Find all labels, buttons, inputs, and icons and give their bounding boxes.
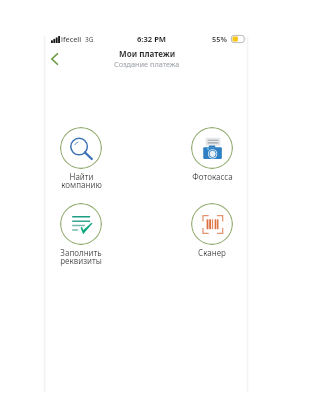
staticText: Мои платежи <box>119 48 176 59</box>
staticText: 3G <box>85 35 94 44</box>
staticText: Заполнить реквизиты <box>60 247 102 266</box>
button[interactable]: Фотокасса <box>169 127 255 182</box>
staticText: 55% <box>212 34 227 44</box>
staticText: Сканер <box>198 247 226 258</box>
button[interactable]: Back <box>44 49 64 69</box>
staticText: Создание платежа <box>114 59 180 68</box>
staticText: 6:32 PM <box>137 34 167 44</box>
staticText: Найти компанию <box>61 171 102 190</box>
staticText: Фотокасса <box>192 171 233 182</box>
button[interactable]: Заполнить реквизиты <box>38 203 124 266</box>
button[interactable]: Сканер <box>169 203 255 258</box>
button[interactable]: Найти компанию <box>38 127 124 190</box>
staticText: lfecell <box>61 34 82 44</box>
